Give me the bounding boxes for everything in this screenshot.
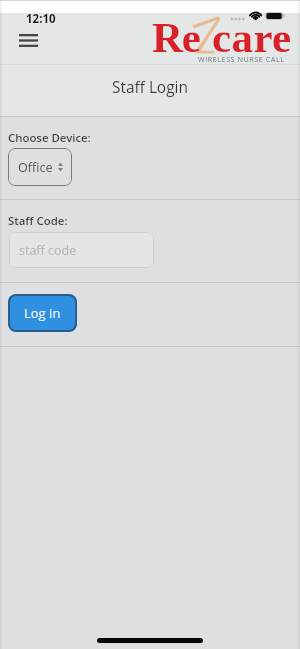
staticText: Staff Login — [112, 77, 188, 98]
staticText: care — [212, 14, 292, 62]
button[interactable]: Office — [8, 148, 72, 186]
staticText: staff code — [19, 242, 77, 259]
button[interactable]: Log in — [8, 294, 77, 332]
button[interactable]: Open navigation menu — [13, 28, 44, 53]
button[interactable]: staff code — [9, 232, 154, 268]
staticText: Log in — [24, 304, 61, 322]
staticText: Choose Device: — [8, 130, 91, 146]
staticText: Re — [152, 14, 200, 62]
staticText: Office — [18, 159, 53, 176]
staticText: WIRELESS NURSE CALL — [198, 54, 285, 64]
staticText: 12:10 — [26, 11, 56, 27]
staticText: Staff Code: — [8, 213, 68, 229]
